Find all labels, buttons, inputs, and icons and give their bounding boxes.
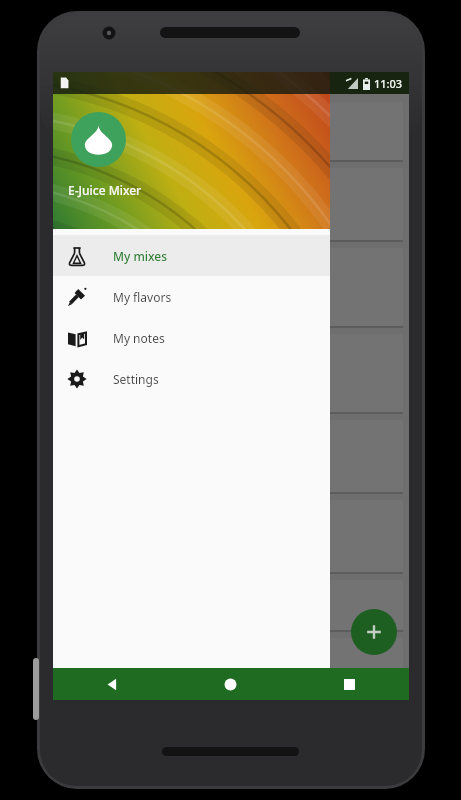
button[interactable]: Back (53, 668, 171, 700)
button[interactable] (71, 112, 126, 167)
button[interactable]: My mixes (53, 235, 330, 276)
button[interactable]: My notes (53, 317, 330, 358)
button[interactable]: Home (171, 668, 290, 700)
staticText: E-Juice Mixer (68, 182, 142, 198)
staticText: My flavors (113, 289, 172, 305)
button[interactable]: Settings (53, 358, 330, 399)
staticText: My notes (113, 330, 165, 346)
button[interactable]: Add new mix (351, 609, 397, 655)
staticText: My mixes (113, 248, 168, 264)
staticText: Settings (113, 371, 159, 387)
staticText: 11:03 (374, 76, 403, 91)
button[interactable]: Recent apps (290, 668, 409, 700)
button[interactable]: My flavors (53, 276, 330, 317)
